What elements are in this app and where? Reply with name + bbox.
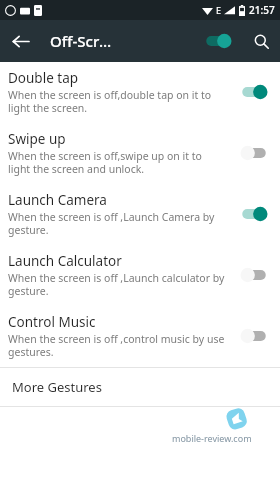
staticText: Off-Screen Gestu…	[50, 31, 119, 51]
staticText: When the screen is off,double tap on it …	[8, 88, 226, 115]
staticText: When the screen is off ,Launch calculato…	[8, 271, 226, 298]
button[interactable]: Launch Camera	[0, 184, 280, 245]
staticText: More Gestures	[12, 378, 102, 396]
staticText: When the screen is off ,control music by…	[8, 332, 226, 359]
button[interactable]: Back	[0, 21, 40, 61]
staticText: Swipe up	[8, 130, 66, 148]
staticText: Launch Camera	[8, 191, 107, 209]
button[interactable]: Double tap	[0, 62, 280, 123]
button[interactable]: Control Music	[0, 306, 280, 368]
staticText: Double tap	[8, 69, 79, 87]
button[interactable]: Master toggle	[198, 23, 238, 59]
staticText: Launch Calculator	[8, 252, 122, 270]
button[interactable]: Launch Calculator	[0, 245, 280, 306]
staticText: mobile-review.com	[172, 432, 252, 444]
staticText: When the screen is off ,Launch Camera by…	[8, 210, 226, 237]
button[interactable]: Search	[242, 22, 280, 60]
staticText: E	[216, 4, 222, 16]
staticText: 21:57	[249, 3, 275, 17]
staticText: Control Music	[8, 313, 96, 331]
button[interactable]: More Gestures	[0, 368, 280, 406]
staticText: When the screen is off,swipe up on it to…	[8, 149, 226, 176]
button[interactable]: Swipe up	[0, 123, 280, 184]
